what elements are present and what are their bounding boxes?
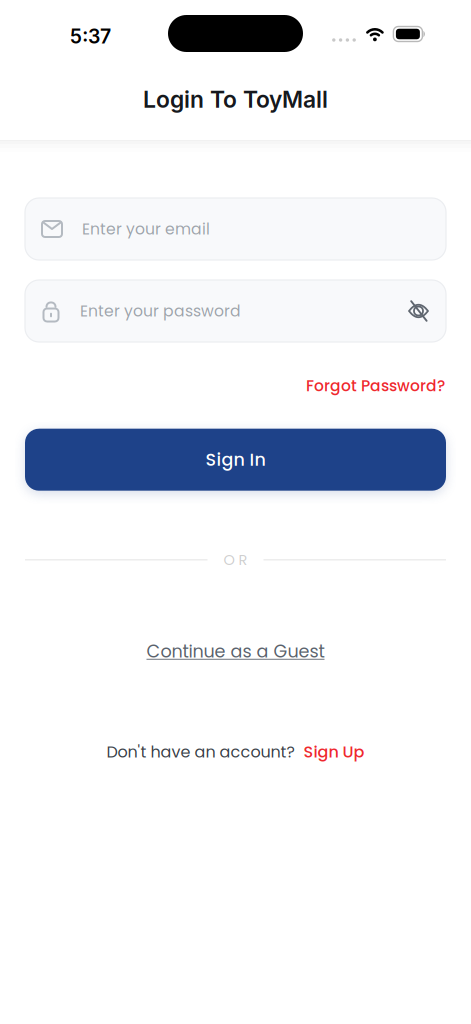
- staticText: Sign In: [205, 447, 265, 472]
- staticText: Continue as a Guest: [146, 639, 324, 664]
- button[interactable]: Enter your email: [25, 198, 446, 260]
- staticText: Enter your password: [80, 300, 241, 322]
- button[interactable]: Sign Up: [303, 741, 364, 763]
- staticText: Sign Up: [303, 741, 364, 763]
- staticText: O R: [223, 550, 247, 570]
- button[interactable]: Enter your password: [25, 280, 446, 342]
- staticText: 5:37: [70, 25, 111, 48]
- staticText: Don't have an account?: [106, 741, 294, 763]
- button[interactable]: Forgot Password?: [306, 375, 445, 397]
- button[interactable]: Show password: [408, 301, 429, 321]
- button[interactable]: Continue as a Guest: [146, 639, 324, 664]
- staticText: Forgot Password?: [306, 375, 445, 397]
- button[interactable]: Sign In: [25, 429, 446, 491]
- staticText: Enter your email: [82, 218, 210, 240]
- staticText: Login To ToyMall: [143, 86, 328, 113]
